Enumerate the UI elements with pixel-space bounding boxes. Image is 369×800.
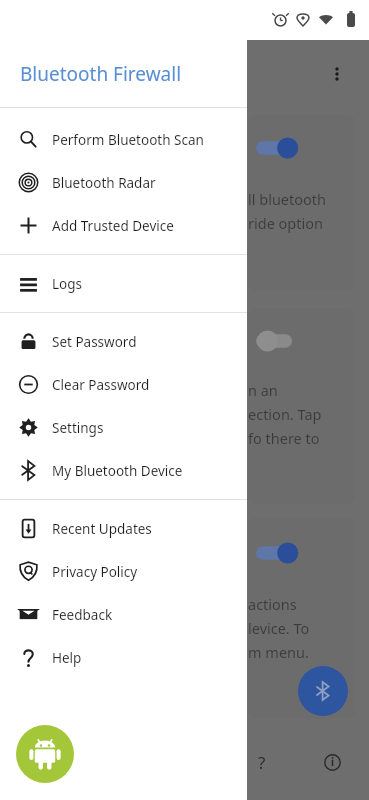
button[interactable]: Help	[240, 740, 284, 784]
staticText: Settings	[52, 419, 104, 437]
button[interactable]: My Bluetooth Device	[0, 449, 247, 492]
button[interactable]: Recent Updates	[0, 507, 247, 550]
staticText: Privacy Policy	[52, 563, 138, 581]
staticText: n an	[248, 380, 278, 400]
button[interactable]: Settings	[0, 406, 247, 449]
staticText: m menu.	[248, 642, 309, 662]
button[interactable]: Bluetooth action	[298, 666, 348, 716]
button[interactable]	[256, 542, 300, 564]
staticText: fo there to	[248, 428, 320, 448]
button[interactable]: Help	[0, 636, 247, 679]
staticText: actions	[248, 594, 297, 614]
button[interactable]: actions	[248, 518, 355, 718]
staticText: Logs	[52, 275, 83, 293]
button[interactable]: Privacy Policy	[0, 550, 247, 593]
staticText: Bluetooth Firewall	[20, 61, 182, 87]
button[interactable]: ll bluetooth	[248, 115, 355, 291]
button[interactable]	[256, 330, 300, 352]
button[interactable]: Perform Bluetooth Scan	[0, 118, 247, 161]
button[interactable]: n an	[248, 308, 355, 504]
button[interactable]: Logs	[0, 262, 247, 305]
button[interactable]: Info	[310, 740, 354, 784]
button[interactable]: Android	[16, 725, 74, 783]
button[interactable]	[256, 137, 300, 159]
button[interactable]: More options	[319, 56, 355, 92]
button[interactable]: Add Trusted Device	[0, 204, 247, 247]
staticText: Add Trusted Device	[52, 217, 174, 235]
staticText: Perform Bluetooth Scan	[52, 131, 204, 149]
staticText: ll bluetooth	[248, 189, 327, 209]
staticText: Set Password	[52, 333, 137, 351]
button[interactable]: Set Password	[0, 320, 247, 363]
button[interactable]: Feedback	[0, 593, 247, 636]
staticText: ection. Tap	[248, 404, 322, 424]
staticText: My Bluetooth Device	[52, 462, 183, 480]
button[interactable]: Clear Password	[0, 363, 247, 406]
staticText: ride option	[248, 213, 323, 233]
staticText: Recent Updates	[52, 520, 152, 538]
staticText: Feedback	[52, 606, 113, 624]
button[interactable]: Bluetooth Radar	[0, 161, 247, 204]
staticText: levice. To	[248, 618, 310, 638]
staticText: ?	[258, 751, 266, 774]
staticText: Clear Password	[52, 376, 150, 394]
staticText: Bluetooth Radar	[52, 174, 156, 192]
staticText: Help	[52, 649, 82, 667]
